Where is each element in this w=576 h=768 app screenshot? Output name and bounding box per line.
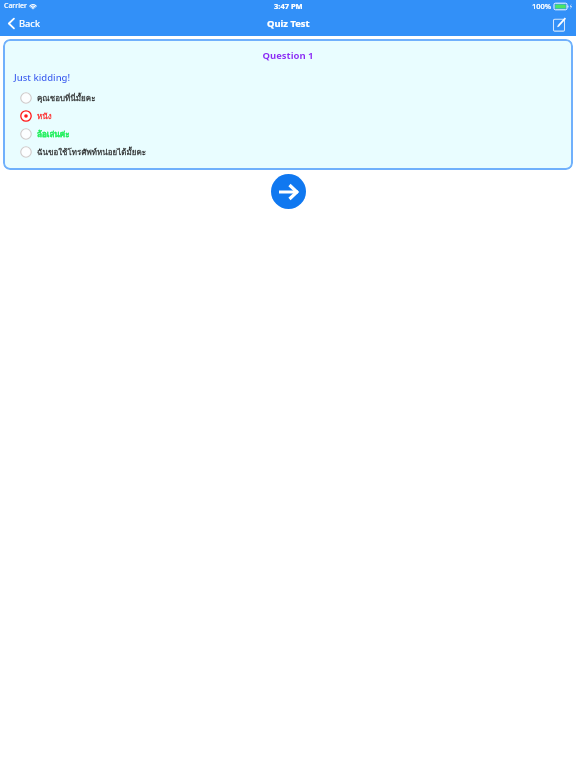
staticText: Just kidding! <box>14 71 71 84</box>
staticText: 100% <box>532 1 552 11</box>
staticText: ล้อเล่นค่ะ <box>37 128 70 141</box>
staticText: Back <box>19 17 40 30</box>
button[interactable]: Next question <box>271 174 306 209</box>
button[interactable]: ล้อเล่นค่ะ <box>3 125 573 143</box>
button[interactable]: Back <box>0 17 50 30</box>
button[interactable]: หนัง <box>3 107 573 125</box>
button[interactable]: คุณชอบที่นี่มั้ยคะ <box>3 89 573 107</box>
button[interactable]: ฉันขอใช้โทรศัพท์หน่อยได้มั้ยคะ <box>3 143 573 161</box>
staticText: หนัง <box>37 110 52 123</box>
staticText: Quiz Test <box>267 17 310 30</box>
staticText: ฉันขอใช้โทรศัพท์หน่อยได้มั้ยคะ <box>37 146 147 159</box>
staticText: หนัง <box>37 110 52 123</box>
staticText: ฉันขอใช้โทรศัพท์หน่อยได้มั้ยคะ <box>37 146 147 159</box>
staticText: Carrier <box>4 1 27 11</box>
staticText: ล้อเล่นค่ะ <box>37 128 70 141</box>
staticText: คุณชอบที่นี่มั้ยคะ <box>37 92 96 105</box>
staticText: 3:47 PM <box>274 1 303 11</box>
button[interactable]: Compose <box>553 17 576 31</box>
staticText: Question 1 <box>3 49 573 62</box>
staticText: คุณชอบที่นี่มั้ยคะ <box>37 92 96 105</box>
